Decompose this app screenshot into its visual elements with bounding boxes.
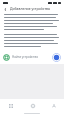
- staticText: Найти устройство: [12, 55, 38, 59]
- staticText: Добавление устройства: [10, 6, 50, 11]
- button[interactable]: Главная: [0, 99, 22, 112]
- button[interactable]: Устройства: [22, 99, 43, 112]
- button[interactable]: Далее: [52, 53, 61, 62]
- button[interactable]: Профиль: [43, 99, 64, 112]
- button[interactable]: Назад: [2, 6, 8, 12]
- button[interactable]: Найти устройство: [3, 52, 52, 62]
